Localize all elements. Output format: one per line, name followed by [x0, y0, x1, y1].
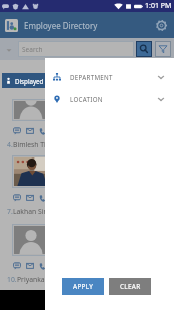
button[interactable]: LOCATION	[45, 88, 174, 110]
staticText: CLEAR	[120, 282, 141, 291]
staticText: Lakhan Singh	[13, 207, 57, 216]
button[interactable]: APPLY	[62, 278, 104, 295]
staticText: Employee Directory	[24, 20, 98, 31]
button[interactable]: Message	[12, 193, 21, 202]
button[interactable]: Email	[25, 193, 34, 202]
staticText: Priyanka Mishra	[17, 275, 69, 284]
button[interactable]: Filter	[155, 41, 171, 57]
button[interactable]: Call	[38, 126, 47, 135]
button[interactable]	[14, 226, 48, 254]
button[interactable]	[14, 157, 48, 186]
button[interactable]: Expand	[3, 44, 14, 55]
button[interactable]: Message	[12, 126, 21, 135]
staticText: 7.	[7, 207, 13, 216]
button[interactable]: Message	[12, 261, 21, 270]
staticText: Displayed Employees	[15, 77, 77, 85]
button[interactable]: CLEAR	[109, 278, 151, 295]
button[interactable]: Settings	[151, 15, 171, 35]
button[interactable]	[14, 101, 48, 119]
staticText: 10.	[7, 275, 17, 284]
staticText: LOCATION	[70, 95, 103, 103]
button[interactable]: Call	[38, 261, 47, 270]
staticText: APPLY	[73, 282, 94, 291]
staticText: 4.	[7, 140, 13, 149]
button[interactable]: DEPARTMENT	[45, 66, 174, 88]
button[interactable]: Search	[18, 41, 134, 57]
staticText: 1:01 PM	[145, 1, 172, 11]
button[interactable]: Email	[25, 261, 34, 270]
staticText: DEPARTMENT	[70, 73, 113, 81]
button[interactable]: Displayed Employees	[2, 73, 172, 88]
staticText: Bimlesh Thakur	[13, 140, 63, 149]
staticText: Search	[22, 45, 43, 54]
button[interactable]: Call	[38, 193, 47, 202]
button[interactable]: Search	[136, 41, 152, 57]
button[interactable]: Email	[25, 126, 34, 135]
